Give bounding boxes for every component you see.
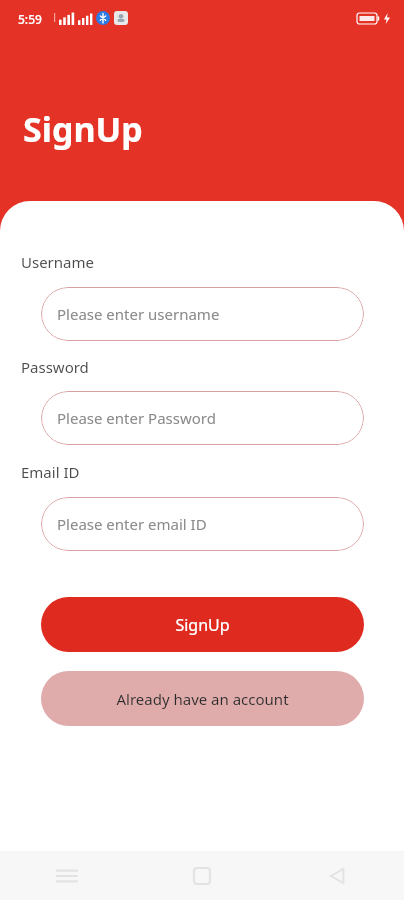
staticText: Please enter email ID xyxy=(57,514,207,534)
button[interactable]: Please enter Password xyxy=(41,391,364,445)
button[interactable]: Please enter email ID xyxy=(41,497,364,551)
staticText: Already have an account xyxy=(116,689,289,709)
button[interactable]: SignUp xyxy=(41,597,364,652)
staticText: Please enter username xyxy=(57,304,220,324)
staticText: Password xyxy=(21,357,89,377)
staticText: 5:59 xyxy=(18,11,42,27)
staticText: Email ID xyxy=(21,462,80,482)
staticText: SignUp xyxy=(175,614,230,636)
staticText: Username xyxy=(21,252,94,272)
button[interactable]: Already have an account xyxy=(41,671,364,726)
button[interactable]: Please enter username xyxy=(41,287,364,341)
staticText: SignUp xyxy=(23,106,143,152)
staticText: Please enter Password xyxy=(57,408,216,428)
